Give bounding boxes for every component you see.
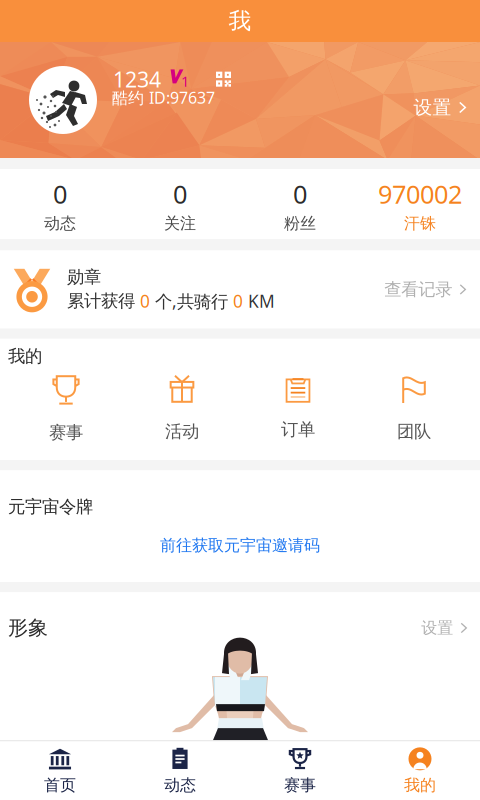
- staticText: 0: [53, 177, 67, 211]
- staticText: 动态: [164, 775, 196, 795]
- staticText: 970002: [378, 177, 462, 211]
- button[interactable]: 我的: [360, 747, 480, 795]
- staticText: 粉丝: [284, 214, 316, 233]
- staticText: 0: [293, 177, 307, 211]
- staticText: 形象: [8, 616, 48, 640]
- staticText: KM: [243, 290, 275, 313]
- button[interactable]: 团队: [356, 374, 472, 442]
- staticText: 团队: [397, 421, 431, 442]
- button[interactable]: 动态: [120, 747, 240, 795]
- staticText: 首页: [44, 775, 76, 795]
- staticText: 我的: [404, 775, 436, 795]
- staticText: 0: [233, 290, 243, 313]
- staticText: 酷约 ID:97637: [112, 87, 215, 108]
- staticText: 前往获取元宇宙邀请码: [160, 535, 320, 555]
- button[interactable]: 设置: [401, 88, 480, 127]
- button[interactable]: 前往获取元宇宙邀请码: [0, 517, 480, 582]
- staticText: 赛事: [284, 775, 316, 795]
- button[interactable]: 赛事: [8, 373, 124, 443]
- staticText: 活动: [165, 421, 199, 442]
- staticText: 汗铢: [404, 214, 436, 233]
- staticText: 关注: [164, 214, 196, 233]
- staticText: 元宇宙令牌: [8, 496, 93, 517]
- staticText: 我的: [8, 346, 42, 367]
- button[interactable]: 活动: [124, 374, 240, 442]
- staticText: 动态: [44, 214, 76, 233]
- button[interactable]: 0: [0, 177, 120, 233]
- staticText: 1: [181, 71, 189, 91]
- staticText: 个,共骑行: [150, 290, 233, 313]
- staticText: 勋章: [67, 266, 101, 288]
- button[interactable]: 首页: [0, 747, 120, 795]
- staticText: 设置: [421, 618, 453, 638]
- staticText: 订单: [281, 419, 315, 440]
- button[interactable]: 勋章: [0, 250, 480, 329]
- staticText: 赛事: [49, 422, 83, 443]
- staticText: 我: [228, 7, 251, 35]
- staticText: 查看记录: [384, 279, 452, 300]
- button[interactable]: 970002: [360, 177, 480, 233]
- staticText: 设置: [413, 96, 451, 119]
- button[interactable]: 赛事: [240, 747, 360, 795]
- button[interactable]: 设置: [411, 612, 467, 644]
- staticText: 1234: [113, 65, 161, 93]
- staticText: 累计获得: [67, 290, 140, 312]
- staticText: 0: [173, 177, 187, 211]
- button[interactable]: 0: [240, 177, 360, 233]
- button[interactable]: 0: [120, 177, 240, 233]
- button[interactable]: 订单: [240, 376, 356, 440]
- staticText: 0: [140, 290, 150, 313]
